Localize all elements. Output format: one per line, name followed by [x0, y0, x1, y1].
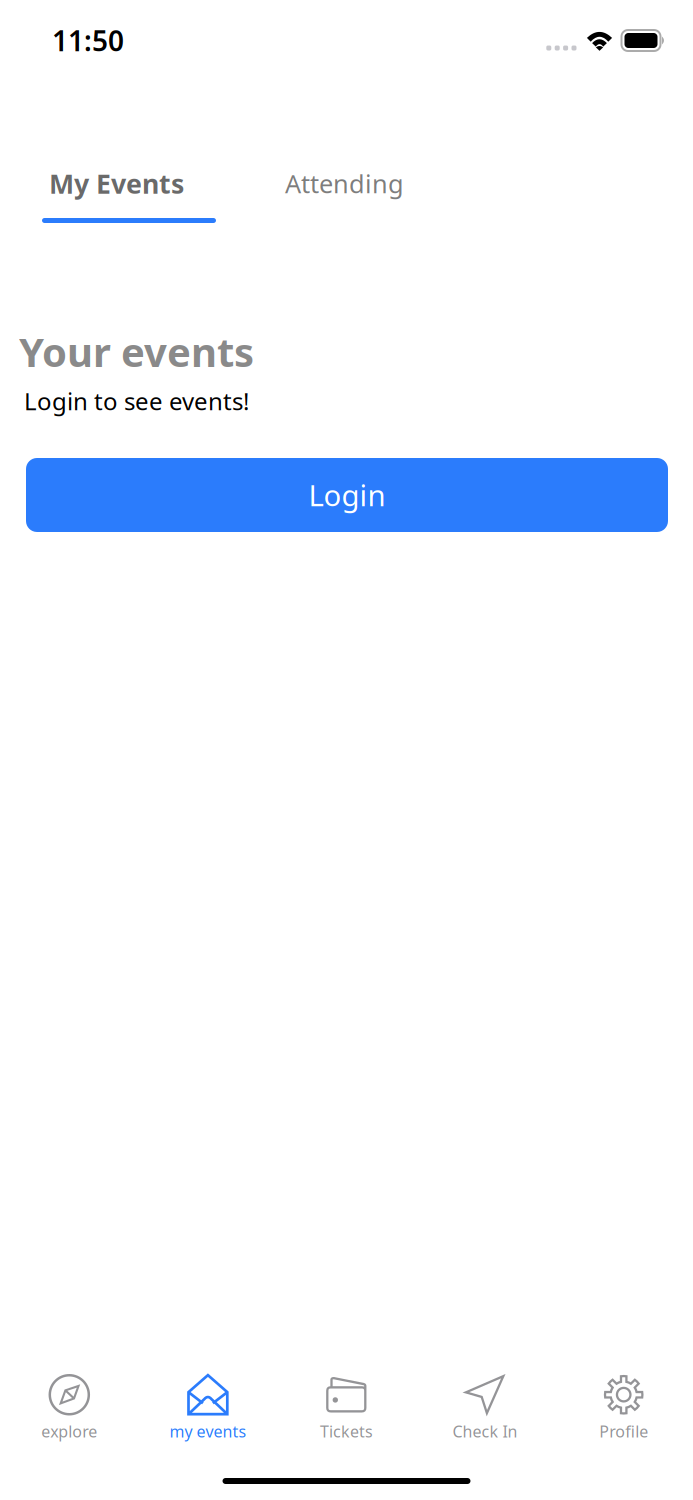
staticText: Your events: [19, 325, 254, 378]
button[interactable]: my events: [139, 1374, 277, 1442]
button[interactable]: Check In: [416, 1374, 554, 1442]
staticText: Tickets: [320, 1421, 373, 1442]
staticText: Attending: [285, 167, 404, 200]
button[interactable]: My Events: [42, 170, 216, 223]
button[interactable]: Login: [26, 458, 668, 532]
staticText: Login to see events!: [24, 385, 249, 417]
button[interactable]: Attending: [285, 170, 404, 221]
staticText: my events: [169, 1421, 246, 1442]
button[interactable]: Tickets: [277, 1374, 416, 1442]
staticText: Profile: [599, 1421, 648, 1442]
staticText: 11:50: [52, 22, 124, 59]
staticText: explore: [41, 1421, 97, 1442]
staticText: My Events: [49, 166, 184, 201]
staticText: Login: [308, 475, 385, 514]
button[interactable]: Profile: [554, 1374, 693, 1442]
button[interactable]: explore: [0, 1374, 139, 1442]
staticText: Check In: [453, 1421, 518, 1442]
